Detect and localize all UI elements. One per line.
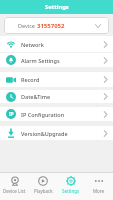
button[interactable]: Device List — [0, 172, 29, 200]
button[interactable]: Record — [0, 72, 113, 87]
staticText: Date&Time — [21, 93, 51, 100]
button[interactable]: Network — [0, 36, 113, 52]
staticText: IP — [9, 111, 14, 117]
button[interactable]: Version&Upgrade — [0, 126, 113, 140]
button[interactable]: Playback — [29, 172, 57, 200]
staticText: 31557052 — [37, 22, 65, 30]
staticText: Record — [21, 76, 40, 83]
staticText: IP Configuration — [21, 111, 65, 118]
staticText: Settings — [62, 188, 80, 194]
button[interactable]: Settings — [57, 172, 85, 200]
staticText: Version&Upgrade — [21, 130, 68, 137]
staticText: Network — [21, 41, 44, 48]
staticText: Device List — [3, 188, 26, 194]
staticText: Settings — [45, 3, 69, 11]
button[interactable]: Alarm Settings — [0, 53, 113, 67]
staticText: Playback — [34, 188, 53, 194]
button[interactable]: Device — [4, 17, 109, 34]
button[interactable]: More — [85, 172, 113, 200]
button[interactable]: IP — [0, 107, 113, 121]
staticText: More — [93, 188, 105, 194]
staticText: Alarm Settings — [21, 57, 60, 64]
staticText: Device — [18, 22, 35, 29]
button[interactable]: Date&Time — [0, 90, 113, 103]
